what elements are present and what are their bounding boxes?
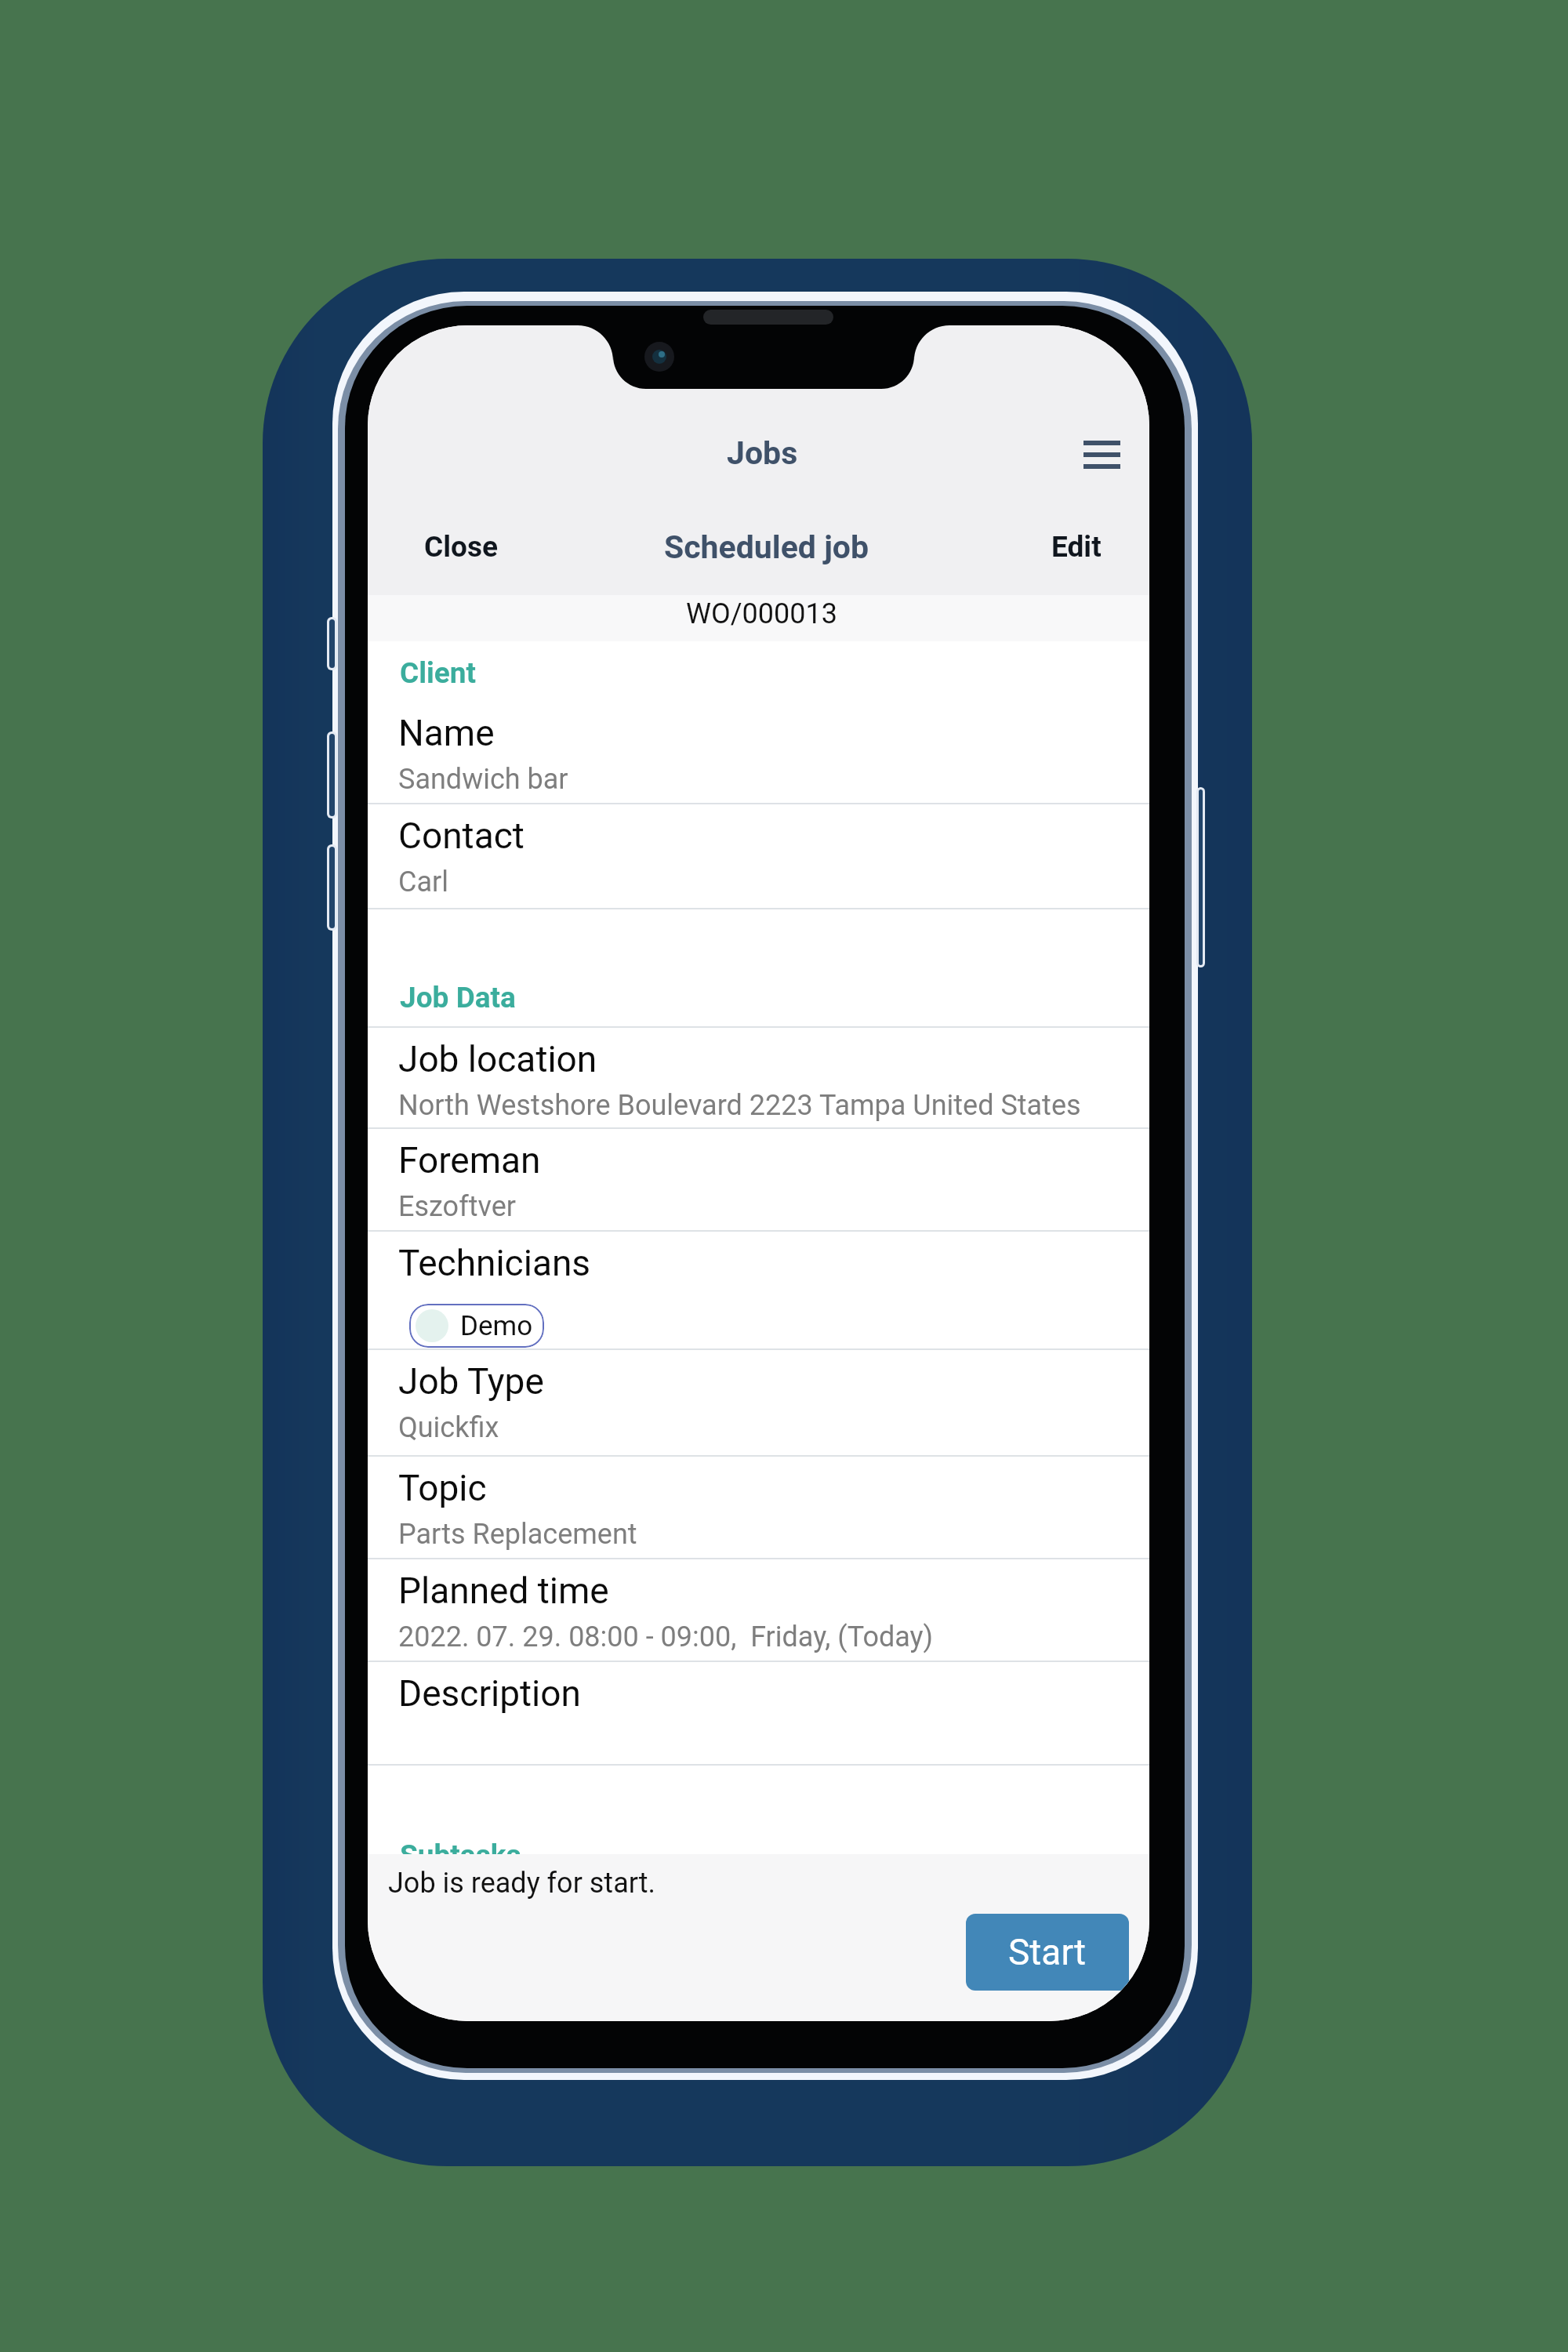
button[interactable]: Planned time — [368, 1559, 1149, 1662]
button[interactable]: Open navigation menu — [1069, 423, 1134, 487]
staticText: Contact — [398, 815, 524, 857]
staticText: Description — [398, 1672, 581, 1715]
staticText: Carl — [398, 866, 448, 898]
staticText: Sandwich bar — [398, 763, 568, 796]
staticText: Quickfix — [398, 1411, 499, 1444]
button[interactable]: Edit — [1040, 519, 1112, 575]
staticText: Close — [424, 530, 498, 564]
staticText: Jobs — [727, 434, 798, 472]
staticText: Job Data — [400, 981, 516, 1014]
button[interactable]: Close — [413, 519, 509, 575]
button[interactable]: Contact — [368, 804, 1149, 909]
button[interactable]: Job location — [368, 1028, 1149, 1129]
staticText: Parts Replacement — [398, 1518, 637, 1551]
button[interactable]: Start — [966, 1914, 1129, 1991]
staticText: Eszoftver — [398, 1190, 516, 1223]
staticText: Job location — [398, 1038, 597, 1080]
button[interactable]: Topic — [368, 1457, 1149, 1559]
staticText: Demo — [460, 1310, 533, 1342]
staticText: Planned time — [398, 1570, 609, 1612]
button[interactable]: Job Type — [368, 1350, 1149, 1457]
staticText: Start — [1008, 1931, 1087, 1973]
staticText: North Westshore Boulevard 2223 Tampa Uni… — [398, 1089, 1081, 1122]
staticText: WO/000013 — [686, 597, 837, 630]
staticText: Foreman — [398, 1139, 541, 1181]
button[interactable]: Description — [368, 1662, 1149, 1766]
staticText: Job Type — [398, 1360, 544, 1403]
staticText: Technicians — [398, 1242, 591, 1284]
button[interactable]: Foreman — [368, 1129, 1149, 1232]
staticText: Edit — [1051, 530, 1102, 564]
staticText: Job is ready for start. — [388, 1867, 656, 1900]
button[interactable]: Name — [368, 702, 1149, 804]
staticText: Scheduled job — [664, 528, 869, 566]
staticText: Subtasks — [400, 1838, 521, 1872]
staticText: Topic — [398, 1467, 487, 1509]
staticText: Client — [400, 656, 477, 690]
button[interactable]: Technicians — [368, 1232, 1149, 1350]
staticText: 2022. 07. 29. 08:00 - 09:00, Friday, (To… — [398, 1621, 934, 1653]
staticText: Name — [398, 712, 495, 754]
